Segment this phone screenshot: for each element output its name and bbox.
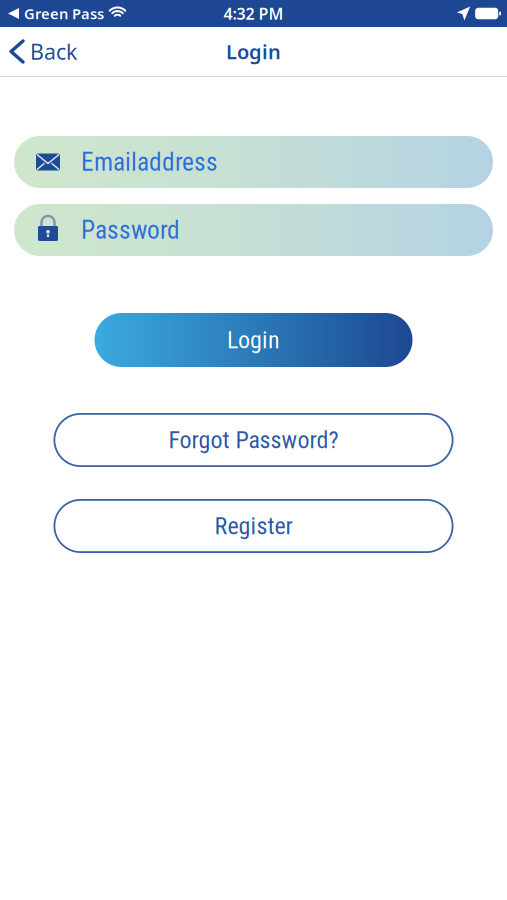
button[interactable]: Register bbox=[53, 499, 453, 553]
button[interactable]: Password bbox=[14, 204, 493, 256]
staticText: 4:32 PM bbox=[223, 3, 283, 24]
staticText: Forgot Password? bbox=[168, 426, 338, 454]
button[interactable]: Login bbox=[94, 313, 412, 367]
staticText: Register bbox=[214, 512, 292, 540]
staticText: Login bbox=[227, 326, 280, 354]
staticText: Login bbox=[226, 38, 281, 65]
button[interactable]: Back bbox=[0, 29, 77, 74]
button[interactable]: Emailaddress bbox=[14, 136, 493, 188]
staticText: Emailaddress bbox=[81, 147, 218, 177]
staticText: Back bbox=[30, 37, 77, 66]
staticText: Green Pass bbox=[24, 4, 104, 23]
button[interactable]: Forgot Password? bbox=[53, 413, 453, 467]
staticText: Password bbox=[81, 215, 180, 245]
